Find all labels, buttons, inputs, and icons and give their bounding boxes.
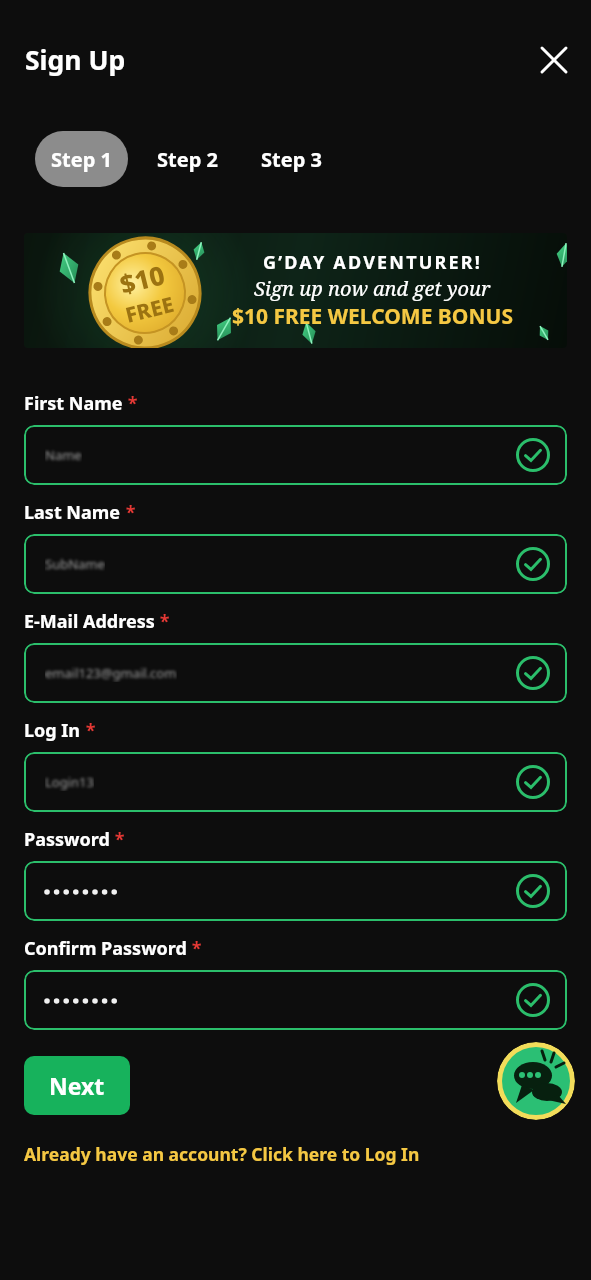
- staticText: Log In: [24, 718, 81, 743]
- button[interactable]: email123@gmail.com: [24, 643, 567, 703]
- button[interactable]: [24, 861, 567, 921]
- staticText: G’DAY ADVENTURER!: [263, 250, 483, 275]
- button[interactable]: Already have an account? Click here to L…: [24, 1142, 420, 1166]
- staticText: First Name: [24, 391, 123, 416]
- staticText: Next: [49, 1070, 105, 1101]
- button[interactable]: Step 3: [261, 131, 322, 187]
- staticText: FREE: [122, 290, 177, 330]
- staticText: Login13: [45, 773, 94, 791]
- staticText: Step 1: [51, 146, 112, 173]
- staticText: *: [155, 609, 170, 634]
- button[interactable]: Next: [24, 1056, 130, 1115]
- button[interactable]: [24, 970, 567, 1030]
- staticText: Confirm Password: [24, 936, 187, 961]
- button[interactable]: [497, 1042, 575, 1120]
- staticText: Password: [24, 827, 110, 852]
- button[interactable]: Step 1: [35, 131, 128, 187]
- staticText: email123@gmail.com: [45, 664, 177, 682]
- staticText: Sign Up: [25, 42, 126, 78]
- staticText: Step 2: [157, 146, 218, 173]
- staticText: *: [110, 827, 125, 852]
- staticText: *: [121, 500, 136, 525]
- button[interactable]: [536, 42, 572, 78]
- staticText: *: [81, 718, 96, 743]
- staticText: *: [123, 391, 138, 416]
- button[interactable]: Step 2: [157, 131, 218, 187]
- staticText: $10 FREE WELCOME BONUS: [232, 302, 513, 331]
- staticText: $10: [116, 256, 168, 301]
- button[interactable]: Name: [24, 425, 567, 485]
- button[interactable]: Login13: [24, 752, 567, 812]
- staticText: E-Mail Address: [24, 609, 155, 634]
- staticText: Step 3: [261, 146, 322, 173]
- staticText: SubName: [45, 555, 105, 573]
- staticText: Last Name: [24, 500, 121, 525]
- staticText: Sign up now and get your: [254, 275, 491, 302]
- staticText: *: [187, 936, 202, 961]
- button[interactable]: SubName: [24, 534, 567, 594]
- staticText: Name: [45, 446, 82, 464]
